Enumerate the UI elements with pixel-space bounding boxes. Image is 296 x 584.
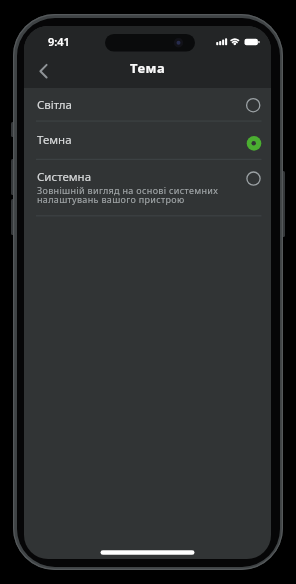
button[interactable] <box>24 121 271 159</box>
button[interactable] <box>24 88 271 121</box>
staticText: 9:41 <box>48 34 70 49</box>
staticText: Темна <box>37 132 72 148</box>
button[interactable] <box>24 159 271 216</box>
staticText: Зовнішній вигляд на основі системних <box>37 184 219 196</box>
button[interactable] <box>30 58 56 84</box>
staticText: налаштувань вашого пристрою <box>37 193 185 205</box>
staticText: Системна <box>37 169 92 185</box>
staticText: Тема <box>130 59 166 77</box>
staticText: Світла <box>37 97 72 113</box>
